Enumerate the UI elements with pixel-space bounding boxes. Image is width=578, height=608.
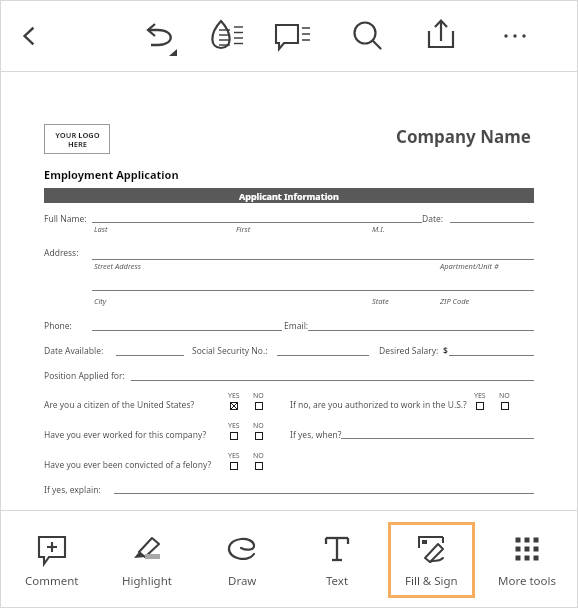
staticText: Email: <box>284 320 309 332</box>
staticText: Phone: <box>44 320 72 332</box>
staticText: Full Name: <box>44 213 87 225</box>
staticText: $ <box>443 345 448 357</box>
staticText: Date Available: <box>44 345 104 357</box>
staticText: If no, are you authorized to work in the… <box>290 399 467 411</box>
staticText: Address: <box>44 247 79 259</box>
staticText: Are you a citizen of the United States? <box>44 399 195 411</box>
staticText: Fill & Sign <box>405 573 458 589</box>
button[interactable]: YES <box>230 402 238 410</box>
staticText: YES <box>228 451 240 461</box>
staticText: If yes, explain: <box>44 484 101 496</box>
button[interactable]: Ink and highlight <box>194 0 256 71</box>
button[interactable]: Back <box>6 13 52 59</box>
staticText: Position Applied for: <box>44 370 125 382</box>
staticText: Date: <box>422 213 444 225</box>
button[interactable]: Share <box>404 0 478 71</box>
staticText: Employment Application <box>44 167 179 182</box>
staticText: NO <box>253 451 264 461</box>
button[interactable]: Text <box>293 522 380 598</box>
button[interactable]: Undo <box>132 0 194 71</box>
button[interactable]: Draw <box>198 522 285 598</box>
staticText: First <box>236 224 251 234</box>
button[interactable]: YES <box>476 402 484 410</box>
button[interactable]: Comment <box>8 522 95 598</box>
staticText: Have you ever been convicted of a felony… <box>44 459 212 471</box>
staticText: NO <box>253 421 264 431</box>
button[interactable]: Search <box>330 0 404 71</box>
staticText: Comment <box>25 573 79 589</box>
staticText: If yes, when? <box>290 429 342 441</box>
staticText: ZIP Code <box>440 296 470 306</box>
staticText: Text <box>326 573 349 589</box>
button[interactable]: YES <box>230 462 238 470</box>
staticText: YES <box>228 421 240 431</box>
staticText: Company Name <box>396 125 531 148</box>
staticText: Desired Salary: <box>379 345 439 357</box>
staticText: YES <box>228 391 240 401</box>
staticText: Have you ever worked for this company? <box>44 429 207 441</box>
staticText: Applicant Information <box>239 190 339 202</box>
staticText: Draw <box>228 573 257 589</box>
button[interactable]: Highlight <box>103 522 190 598</box>
staticText: More tools <box>498 573 556 589</box>
staticText: Street Address <box>94 261 141 271</box>
button[interactable]: More options <box>478 0 552 71</box>
staticText: Last <box>94 224 108 234</box>
staticText: M.I. <box>372 224 385 234</box>
staticText: State <box>372 296 389 306</box>
staticText: NO <box>499 391 510 401</box>
button[interactable]: Fill & Sign <box>388 522 475 598</box>
button[interactable]: Comments <box>256 0 330 71</box>
button[interactable]: NO <box>255 432 263 440</box>
button[interactable]: NO <box>255 462 263 470</box>
staticText: Social Security No.: <box>192 345 268 357</box>
staticText: Highlight <box>122 573 172 589</box>
button[interactable]: NO <box>255 402 263 410</box>
button[interactable]: More tools <box>483 522 570 598</box>
staticText: YOUR LOGO HERE <box>55 130 100 149</box>
button[interactable]: NO <box>501 402 509 410</box>
staticText: City <box>94 296 107 306</box>
staticText: NO <box>253 391 264 401</box>
staticText: YES <box>474 391 486 401</box>
staticText: Apartment/Unit # <box>440 261 499 271</box>
button[interactable]: YES <box>230 432 238 440</box>
